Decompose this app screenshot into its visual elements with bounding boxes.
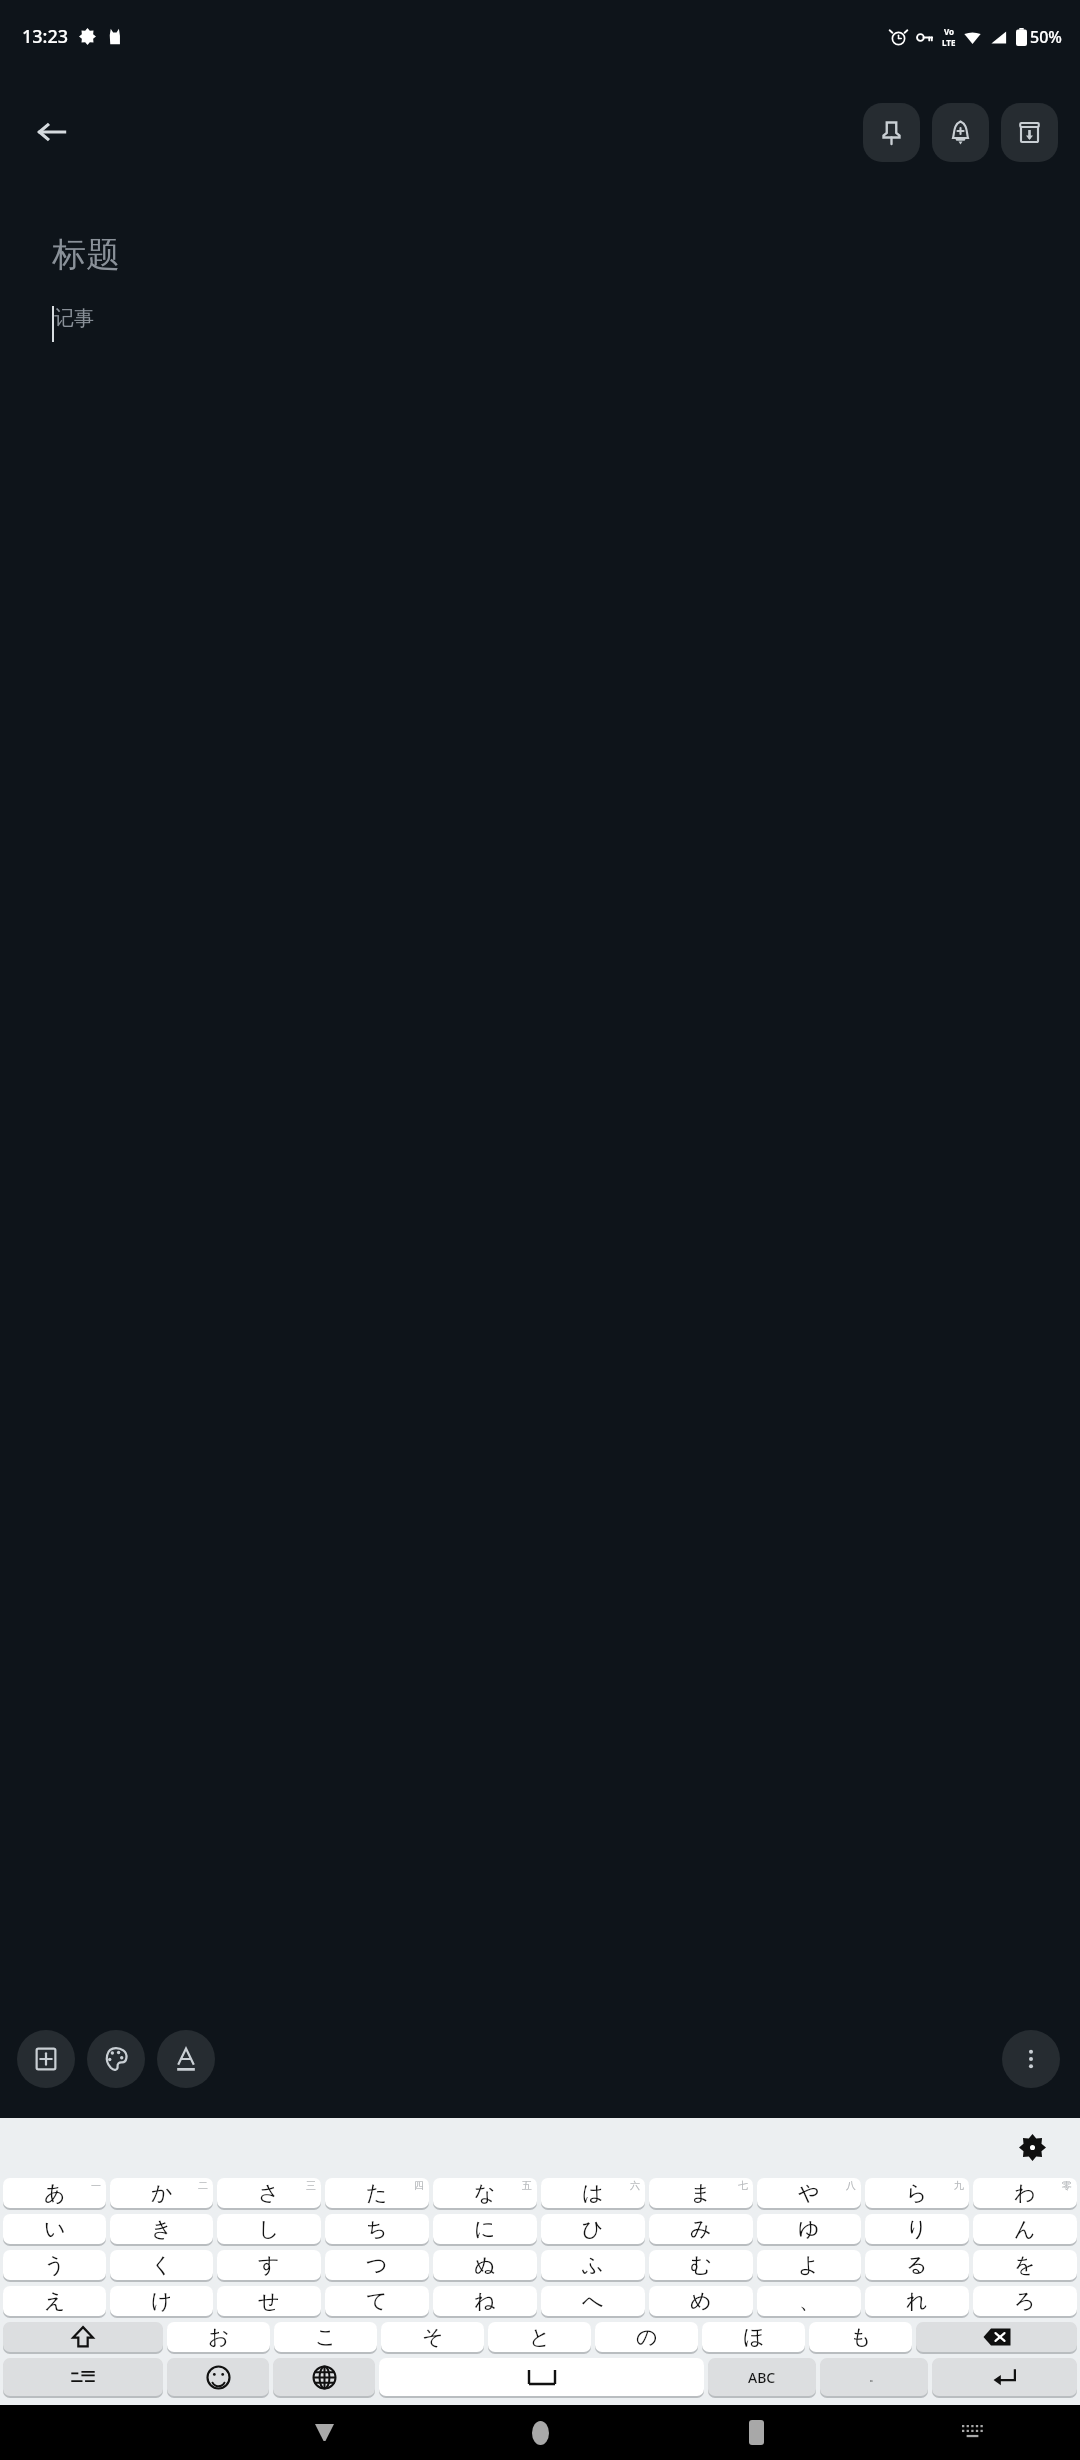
button[interactable]: Add xyxy=(17,2030,75,2088)
button[interactable]: Keyboard settings xyxy=(1010,2125,1054,2169)
button[interactable]: な xyxy=(433,2178,537,2208)
staticText: 标题 xyxy=(52,233,120,276)
staticText: て xyxy=(366,2288,388,2314)
button[interactable]: ま xyxy=(649,2178,753,2208)
button[interactable]: ん xyxy=(973,2214,1077,2244)
button[interactable]: せ xyxy=(217,2286,321,2316)
staticText: へ xyxy=(582,2288,604,2314)
button[interactable]: ら xyxy=(865,2178,969,2208)
button[interactable]: う xyxy=(3,2250,106,2280)
staticText: 二 xyxy=(198,2179,208,2192)
button[interactable]: お xyxy=(167,2322,270,2352)
staticText: よ xyxy=(798,2252,820,2278)
button[interactable]: る xyxy=(865,2250,969,2280)
button[interactable]: け xyxy=(110,2286,213,2316)
staticText: う xyxy=(44,2252,66,2278)
button[interactable]: こ xyxy=(274,2322,377,2352)
button[interactable]: ふ xyxy=(541,2250,645,2280)
button[interactable]: れ xyxy=(865,2286,969,2316)
button[interactable]: Formatting xyxy=(157,2030,215,2088)
button[interactable]: Archive xyxy=(1001,103,1058,162)
button[interactable]: え xyxy=(3,2286,106,2316)
button[interactable]: Back xyxy=(216,2405,432,2460)
button[interactable]: た xyxy=(325,2178,429,2208)
button[interactable]: Pin xyxy=(863,103,920,162)
button[interactable]: ABC xyxy=(708,2358,816,2396)
staticText: あ xyxy=(44,2180,66,2206)
staticText: ろ xyxy=(1014,2288,1036,2314)
staticText: む xyxy=(690,2252,712,2278)
staticText: 13:23 xyxy=(22,24,69,49)
button[interactable]: 。 xyxy=(820,2358,928,2396)
button[interactable]: し xyxy=(217,2214,321,2244)
staticText: 六 xyxy=(630,2179,640,2192)
staticText: を xyxy=(1014,2252,1036,2278)
staticText: 七 xyxy=(738,2179,748,2192)
button[interactable]: め xyxy=(649,2286,753,2316)
button[interactable]: 、 xyxy=(757,2286,861,2316)
button[interactable]: Switch keyboard xyxy=(864,2405,1080,2460)
button[interactable]: と xyxy=(488,2322,591,2352)
staticText: も xyxy=(850,2324,872,2350)
button[interactable]: む xyxy=(649,2250,753,2280)
button[interactable]: Space xyxy=(379,2358,704,2396)
button[interactable]: り xyxy=(865,2214,969,2244)
staticText: み xyxy=(690,2216,712,2242)
button[interactable]: そ xyxy=(381,2322,484,2352)
staticText: す xyxy=(258,2252,280,2278)
button[interactable]: Recents xyxy=(648,2405,864,2460)
button[interactable]: Home xyxy=(432,2405,648,2460)
staticText: の xyxy=(636,2324,658,2350)
staticText: え xyxy=(44,2288,66,2314)
button[interactable]: も xyxy=(809,2322,912,2352)
button[interactable]: つ xyxy=(325,2250,429,2280)
button[interactable]: Enter xyxy=(932,2358,1077,2396)
button[interactable]: Backspace xyxy=(916,2322,1077,2352)
button[interactable]: Shift xyxy=(3,2322,163,2352)
button[interactable]: て xyxy=(325,2286,429,2316)
button[interactable]: Color xyxy=(87,2030,145,2088)
staticText: LTE xyxy=(942,37,956,48)
button[interactable]: ち xyxy=(325,2214,429,2244)
button[interactable]: ほ xyxy=(702,2322,805,2352)
staticText: き xyxy=(151,2216,173,2242)
button[interactable]: に xyxy=(433,2214,537,2244)
button[interactable]: ゆ xyxy=(757,2214,861,2244)
button[interactable]: わ xyxy=(973,2178,1077,2208)
button[interactable]: Back xyxy=(20,100,84,164)
button[interactable]: さ xyxy=(217,2178,321,2208)
button[interactable]: Reminder xyxy=(932,103,989,162)
button[interactable]: ひ xyxy=(541,2214,645,2244)
staticText: ん xyxy=(1014,2216,1036,2242)
button[interactable]: よ xyxy=(757,2250,861,2280)
button[interactable]: い xyxy=(3,2214,106,2244)
button[interactable]: の xyxy=(595,2322,698,2352)
staticText: ま xyxy=(690,2180,712,2206)
button[interactable]: Symbols xyxy=(3,2358,163,2396)
button[interactable]: あ xyxy=(3,2178,106,2208)
staticText: ら xyxy=(906,2180,928,2206)
button[interactable]: か xyxy=(110,2178,213,2208)
button[interactable]: を xyxy=(973,2250,1077,2280)
button[interactable]: へ xyxy=(541,2286,645,2316)
button[interactable]: ね xyxy=(433,2286,537,2316)
button[interactable]: き xyxy=(110,2214,213,2244)
staticText: わ xyxy=(1014,2180,1036,2206)
staticText: ぬ xyxy=(474,2252,496,2278)
staticText: ね xyxy=(474,2288,496,2314)
button[interactable]: く xyxy=(110,2250,213,2280)
staticText: つ xyxy=(366,2252,388,2278)
button[interactable]: Language xyxy=(273,2358,375,2396)
button[interactable]: み xyxy=(649,2214,753,2244)
staticText: れ xyxy=(906,2288,928,2314)
button[interactable]: ろ xyxy=(973,2286,1077,2316)
staticText: ひ xyxy=(582,2216,604,2242)
button[interactable]: す xyxy=(217,2250,321,2280)
button[interactable]: Emoji xyxy=(167,2358,269,2396)
button[interactable]: ぬ xyxy=(433,2250,537,2280)
staticText: な xyxy=(474,2180,496,2206)
button[interactable]: は xyxy=(541,2178,645,2208)
staticText: た xyxy=(366,2180,388,2206)
button[interactable]: や xyxy=(757,2178,861,2208)
button[interactable]: More options xyxy=(1002,2030,1060,2088)
